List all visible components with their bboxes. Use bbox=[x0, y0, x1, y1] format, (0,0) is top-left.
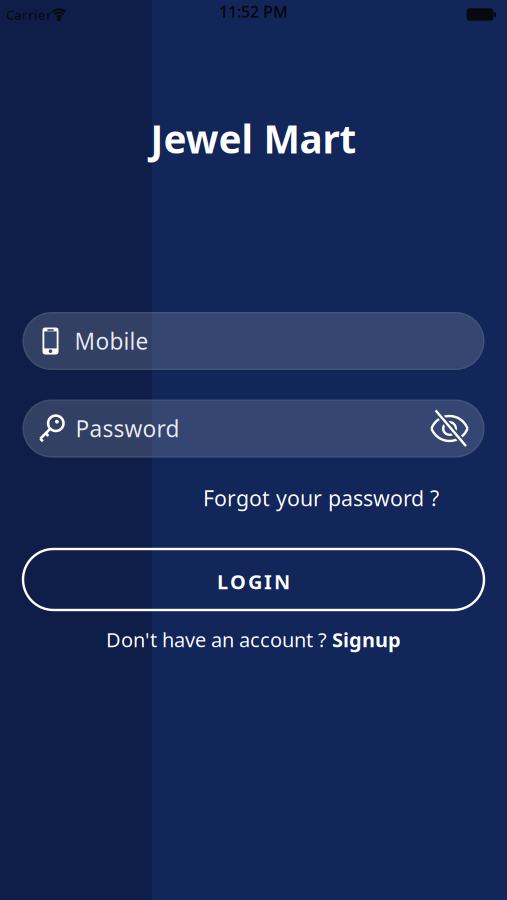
staticText: Forgot your password ? bbox=[203, 484, 439, 512]
staticText: Jewel Mart bbox=[150, 113, 356, 164]
button[interactable]: L bbox=[23, 549, 484, 610]
staticText: Carrier bbox=[6, 6, 52, 23]
staticText: L bbox=[217, 568, 228, 595]
button[interactable]: Mobile bbox=[22, 312, 484, 370]
staticText: 11:52 PM bbox=[219, 1, 288, 22]
staticText: O bbox=[230, 568, 246, 595]
button[interactable]: Password bbox=[22, 399, 484, 457]
staticText: N bbox=[274, 568, 290, 595]
staticText: G bbox=[248, 568, 262, 595]
staticText: I bbox=[264, 568, 272, 595]
staticText: Signup bbox=[332, 626, 401, 653]
staticText: Mobile bbox=[74, 326, 148, 356]
button[interactable] bbox=[430, 409, 468, 447]
button[interactable]: Forgot your password ? bbox=[203, 484, 439, 512]
staticText: Password bbox=[75, 413, 179, 443]
button[interactable]: Don't have an account ? bbox=[106, 626, 401, 653]
staticText: Don't have an account ? bbox=[106, 626, 332, 653]
